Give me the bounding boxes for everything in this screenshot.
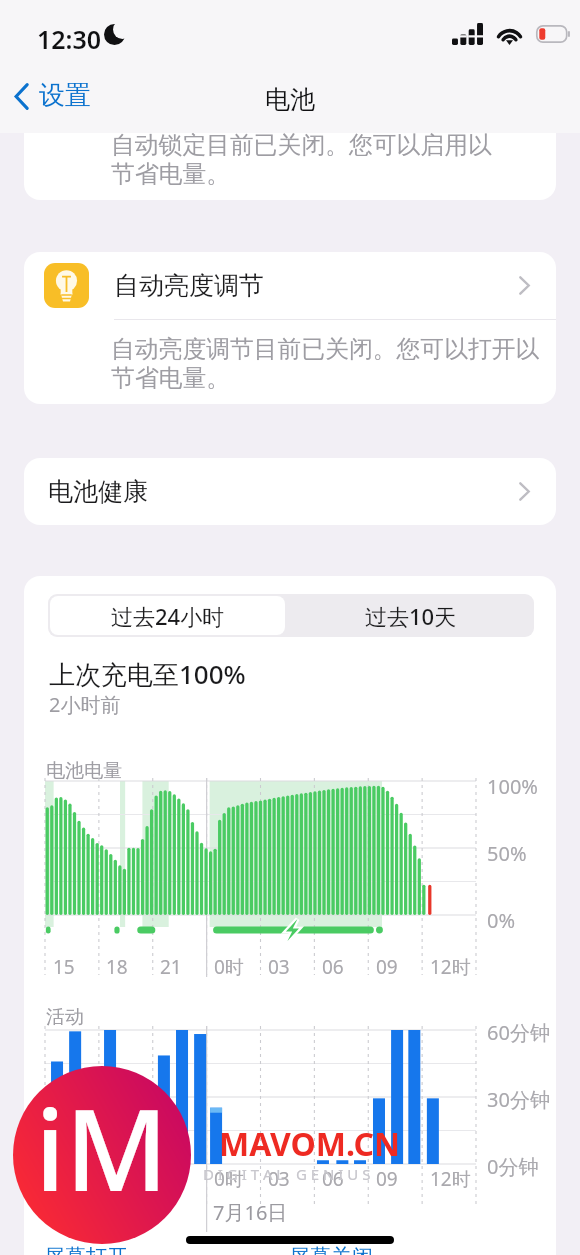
other: Open [519, 482, 530, 501]
staticText: 03 [268, 1166, 290, 1192]
button[interactable]: 过去10天 [287, 594, 534, 637]
staticText: 自动亮度调节 [114, 270, 264, 301]
staticText: 0分钟 [487, 1153, 539, 1180]
staticText: 0时 [214, 954, 244, 980]
staticText: 过去24小时 [111, 601, 225, 631]
staticText: 电池电量 [46, 759, 122, 783]
staticText: 活动 [46, 1005, 84, 1029]
button[interactable]: 过去24小时 [50, 596, 285, 635]
staticText: 09 [376, 954, 398, 980]
staticText: MAVOM.CN [219, 1122, 400, 1166]
staticText: 03 [268, 954, 290, 980]
staticText: 18 [106, 1166, 128, 1192]
staticText: 电池健康 [48, 476, 148, 507]
staticText: 09 [376, 1166, 398, 1192]
button[interactable]: 自动亮度调节 [24, 252, 556, 319]
staticText: 06 [322, 1166, 344, 1192]
staticText: 7月16日 [213, 1199, 288, 1226]
button[interactable]: 自动锁定目前已关闭。您可以启用以 [24, 0, 556, 200]
staticText: 18 [106, 954, 128, 980]
staticText: 12:30 [37, 22, 102, 56]
staticText: 30分钟 [487, 1086, 550, 1113]
staticText: 自动亮度调节目前已关闭。您可以打开以 [111, 334, 540, 364]
staticText: 12时 [430, 1166, 471, 1192]
staticText: 0% [487, 907, 516, 934]
staticText: 节省电量。 [111, 363, 230, 393]
other: Open [519, 276, 530, 295]
staticText: 12时 [430, 954, 471, 980]
staticText: 屏幕打开 [44, 1244, 128, 1255]
staticText: 自动锁定目前已关闭。您可以启用以 [111, 130, 492, 160]
staticText: 2小时前 [49, 691, 121, 718]
staticText: iM [35, 1071, 169, 1224]
staticText: 电池 [265, 84, 315, 115]
staticText: 06 [322, 954, 344, 980]
staticText: 0时 [214, 1166, 244, 1192]
staticText: 上次充电至100% [49, 656, 246, 692]
staticText: D I G I T A L G E N I U S [203, 1164, 371, 1184]
button[interactable]: 设置 [10, 76, 95, 117]
staticText: 节省电量。 [111, 159, 230, 189]
staticText: 屏幕关闭 [289, 1244, 373, 1255]
staticText: 设置 [39, 79, 91, 112]
staticText: 50% [487, 840, 527, 867]
button[interactable]: 电池健康 [24, 458, 556, 525]
staticText: 过去10天 [365, 601, 457, 631]
staticText: 100% [487, 773, 538, 800]
staticText: 60分钟 [487, 1019, 550, 1046]
staticText: 21 [160, 954, 182, 980]
staticText: 15 [53, 954, 75, 980]
staticText: 15 [53, 1166, 75, 1192]
